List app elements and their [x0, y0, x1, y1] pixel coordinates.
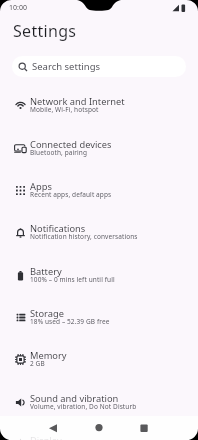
- staticText: Recent apps, default apps: [30, 190, 112, 199]
- staticText: Display: [30, 434, 62, 440]
- button[interactable]: Network and Internet: [0, 84, 198, 126]
- button[interactable]: Notifications: [0, 211, 198, 253]
- staticText: Mobile, Wi-Fi, hotspot: [30, 105, 99, 114]
- button[interactable]: Storage: [0, 296, 198, 338]
- staticText: Network and Internet: [30, 95, 125, 108]
- button[interactable]: Apps: [0, 169, 198, 211]
- staticText: 18% used – 52.39 GB free: [30, 317, 110, 326]
- staticText: 100% – 0 mins left until full: [30, 275, 115, 284]
- staticText: Settings: [13, 20, 77, 42]
- button[interactable]: [132, 416, 198, 440]
- staticText: Connected devices: [30, 138, 112, 151]
- staticText: Storage: [30, 307, 64, 320]
- staticText: Apps: [30, 180, 52, 193]
- button[interactable]: Memory: [0, 338, 198, 380]
- staticText: 2 GB: [30, 359, 45, 368]
- button[interactable]: [66, 416, 132, 440]
- button[interactable]: Sound and vibration: [0, 381, 198, 423]
- staticText: Bluetooth, pairing: [30, 148, 88, 157]
- button[interactable]: [0, 416, 66, 440]
- button[interactable]: Search settings: [12, 56, 186, 77]
- staticText: Notifications: [30, 222, 86, 235]
- button[interactable]: Battery: [0, 254, 198, 296]
- staticText: Search settings: [32, 60, 101, 73]
- staticText: Notification history, conversations: [30, 232, 138, 241]
- staticText: Memory: [30, 349, 67, 362]
- button[interactable]: Connected devices: [0, 127, 198, 169]
- staticText: Volume, vibration, Do Not Disturb: [30, 402, 137, 411]
- button[interactable]: Display: [0, 423, 198, 440]
- staticText: Battery: [30, 265, 62, 278]
- staticText: Sound and vibration: [30, 392, 119, 405]
- staticText: 10:00: [9, 3, 27, 13]
